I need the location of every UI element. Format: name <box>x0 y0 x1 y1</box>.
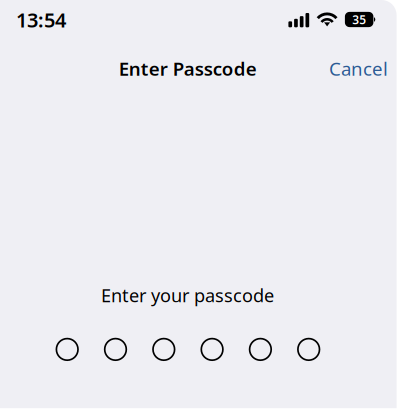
button[interactable]: Cancel <box>319 48 398 89</box>
staticText: Enter Passcode <box>119 56 257 81</box>
staticText: Cancel <box>329 56 388 81</box>
staticText: 35 <box>352 11 366 27</box>
staticText: Enter your passcode <box>101 283 274 307</box>
staticText: 13:54 <box>16 6 66 33</box>
